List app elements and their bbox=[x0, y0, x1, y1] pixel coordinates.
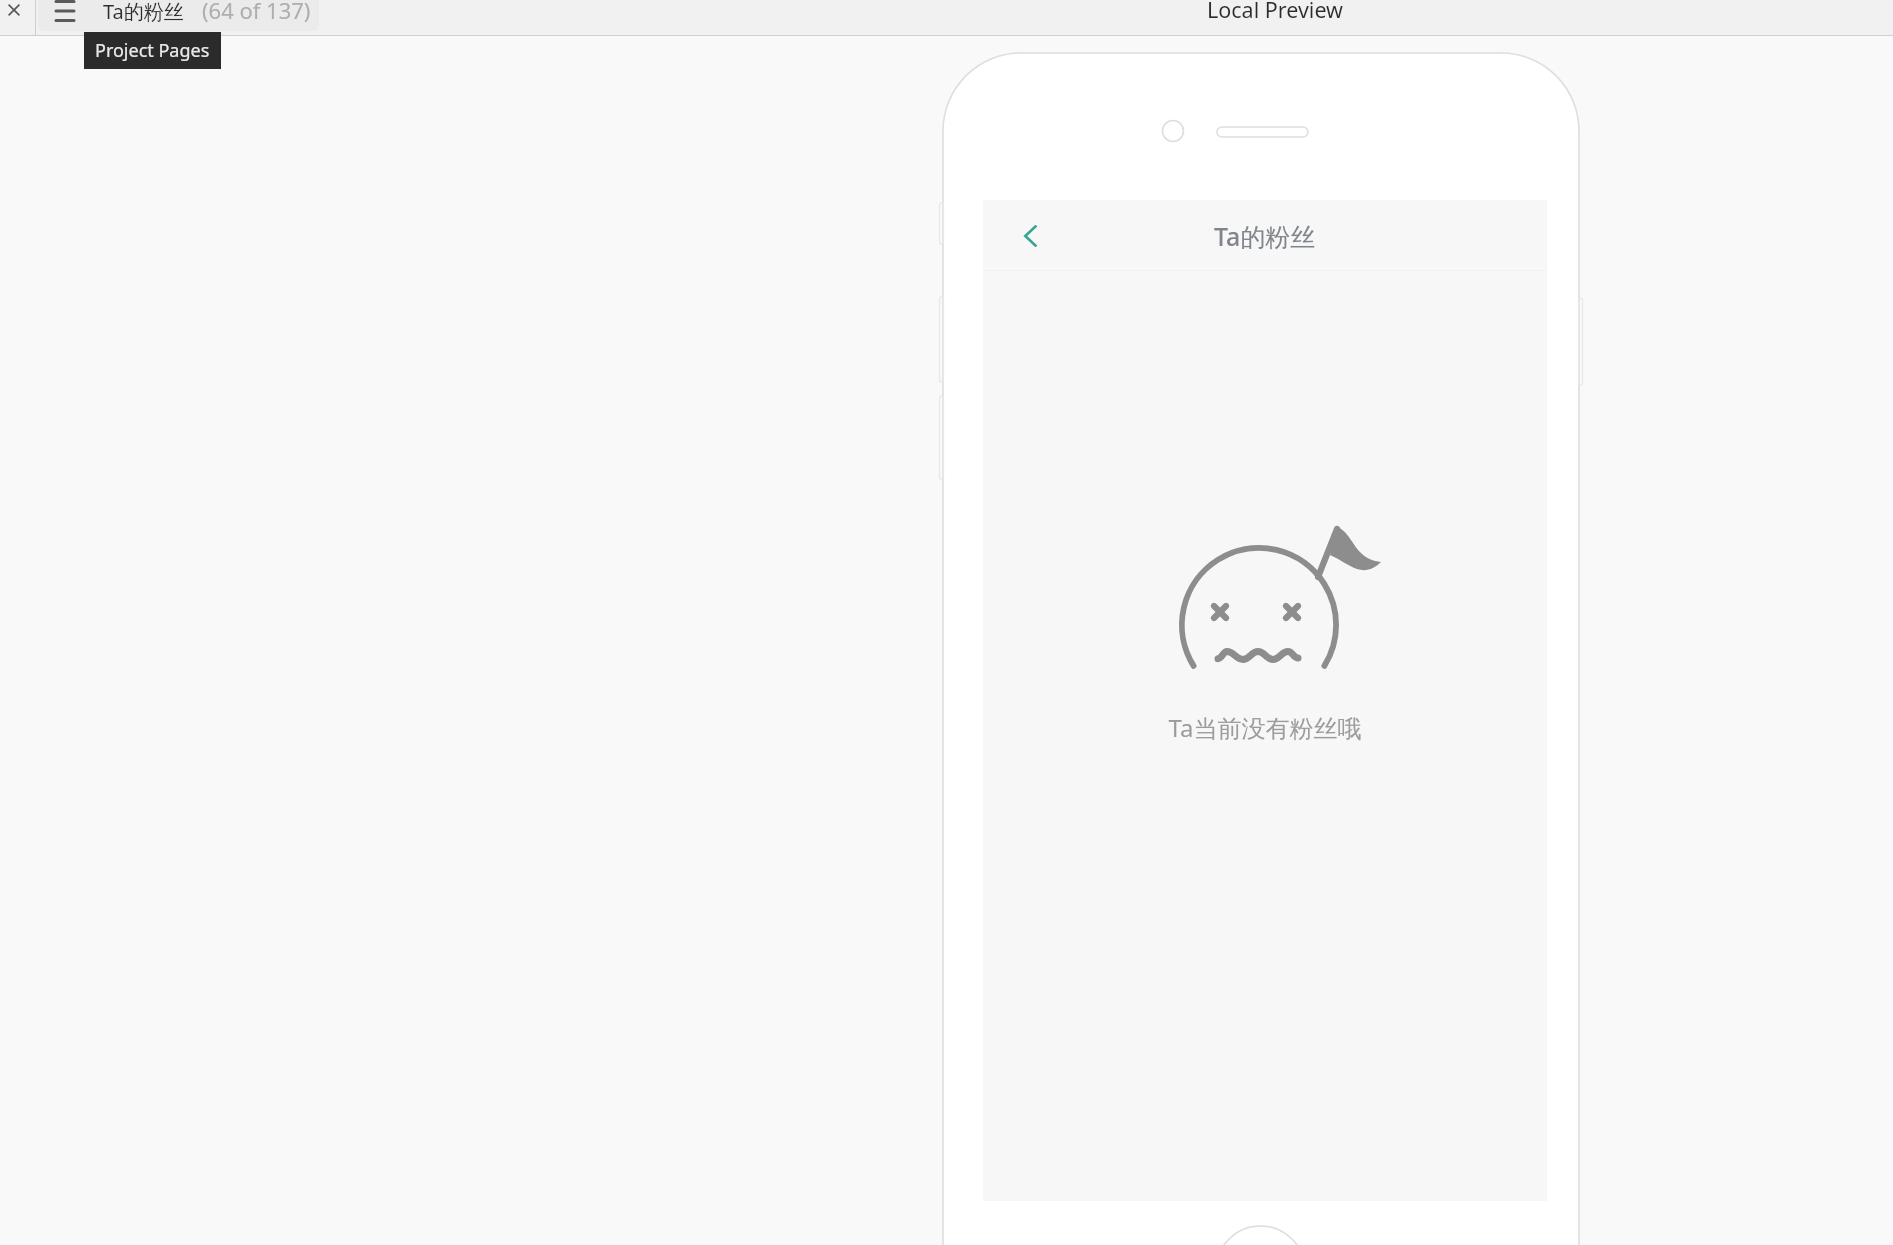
button[interactable]: Back bbox=[1006, 212, 1054, 260]
button[interactable]: Close bbox=[0, 0, 28, 20]
staticText: Ta当前没有粉丝哦 bbox=[983, 711, 1547, 744]
button[interactable]: Project pages menu bbox=[50, 0, 80, 28]
staticText: Ta的粉丝 bbox=[1214, 219, 1316, 253]
staticText: Project Pages bbox=[95, 38, 210, 63]
staticText: (64 of 137) bbox=[202, 0, 311, 25]
staticText: Local Preview bbox=[1207, 0, 1344, 24]
staticText: Ta的粉丝 bbox=[103, 0, 184, 25]
button[interactable]: Project pages menu bbox=[38, 0, 319, 31]
